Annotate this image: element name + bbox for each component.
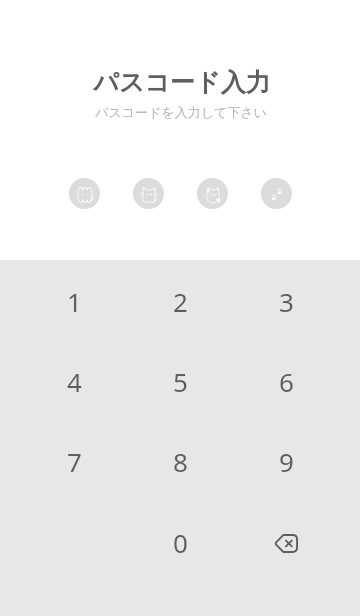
staticText: パスコード入力 [93, 67, 271, 98]
staticText: 7 [67, 444, 82, 479]
button[interactable]: 5 [136, 346, 224, 416]
staticText: 2 [173, 284, 188, 319]
staticText: 9 [279, 444, 294, 479]
button[interactable]: 7 [30, 426, 118, 496]
button[interactable]: 0 [136, 507, 224, 577]
button[interactable]: Delete [242, 507, 330, 577]
staticText: 6 [279, 364, 294, 399]
button[interactable]: 1 [30, 266, 118, 336]
staticText: 1 [67, 284, 82, 319]
staticText: 0 [173, 525, 188, 560]
button[interactable]: 6 [242, 346, 330, 416]
staticText: 3 [279, 284, 294, 319]
button[interactable]: 8 [136, 426, 224, 496]
staticText: 5 [173, 364, 188, 399]
button[interactable]: 9 [242, 426, 330, 496]
button[interactable]: 2 [136, 266, 224, 336]
button[interactable]: 3 [242, 266, 330, 336]
button[interactable]: 4 [30, 346, 118, 416]
staticText: 4 [67, 364, 82, 399]
staticText: 8 [173, 444, 188, 479]
staticText: パスコードを入力して下さい [95, 104, 267, 120]
